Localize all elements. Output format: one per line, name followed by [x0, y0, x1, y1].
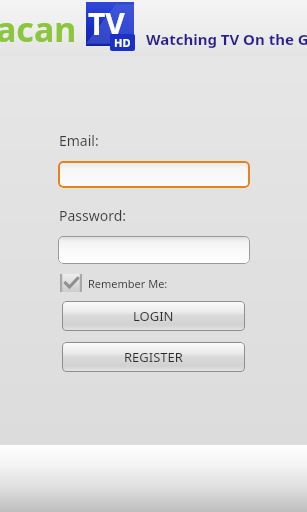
staticText: HD: [114, 35, 131, 50]
staticText: Remember Me:: [88, 276, 168, 291]
staticText: REGISTER: [124, 348, 183, 366]
staticText: LOGIN: [133, 307, 174, 325]
button[interactable]: [58, 236, 250, 264]
staticText: TV: [88, 3, 125, 44]
button[interactable]: Remember Me checkbox: [60, 274, 168, 292]
staticText: Email:: [59, 131, 99, 150]
staticText: Watching TV On the GO!: [146, 29, 307, 49]
button[interactable]: [58, 161, 250, 188]
button[interactable]: Remember Me checkbox: [60, 274, 82, 292]
staticText: Password:: [59, 206, 127, 225]
button[interactable]: REGISTER: [62, 342, 245, 372]
button[interactable]: LOGIN: [62, 301, 245, 331]
staticText: acan: [0, 6, 77, 52]
